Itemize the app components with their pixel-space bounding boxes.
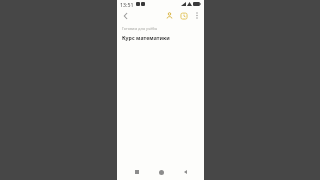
button[interactable]: More options bbox=[191, 10, 202, 21]
button[interactable]: Back bbox=[180, 167, 190, 177]
button[interactable]: Recent apps bbox=[132, 167, 142, 177]
staticText: Курс математики bbox=[122, 34, 170, 41]
staticText: Готовим для учёбы bbox=[122, 26, 158, 31]
button[interactable]: Back bbox=[119, 9, 132, 22]
button[interactable]: Share bbox=[163, 9, 176, 22]
button[interactable]: Home bbox=[156, 167, 166, 177]
staticText: 13:51 bbox=[120, 1, 134, 8]
button[interactable]: Reminder bbox=[177, 9, 190, 22]
